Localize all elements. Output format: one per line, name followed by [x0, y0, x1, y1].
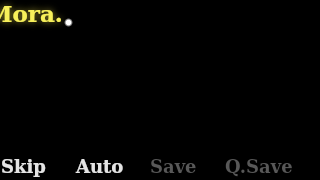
- staticText: Mora.: [0, 0, 63, 27]
- button[interactable]: Auto: [76, 153, 124, 179]
- staticText: Q.Save: [225, 156, 293, 177]
- staticText: Skip: [1, 156, 46, 177]
- staticText: Auto: [76, 156, 124, 177]
- staticText: Save: [150, 156, 197, 177]
- button[interactable]: Q.Save: [224, 153, 294, 179]
- button[interactable]: Skip: [0, 153, 47, 179]
- button[interactable]: Save: [148, 153, 198, 179]
